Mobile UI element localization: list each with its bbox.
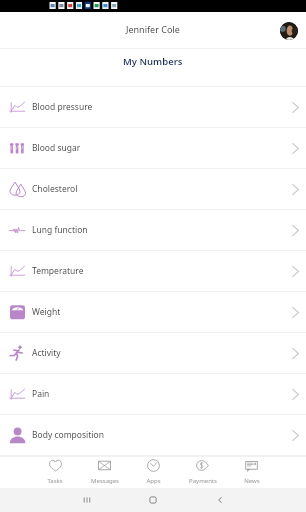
staticText: Activity (32, 347, 61, 359)
staticText: Body composition (32, 429, 104, 441)
button[interactable]: Apps (129, 457, 178, 488)
staticText: Blood sugar (32, 142, 81, 154)
staticText: News (244, 477, 260, 485)
staticText: Cholesterol (32, 183, 78, 195)
staticText: Lung function (32, 224, 88, 236)
button[interactable]: Body composition (0, 415, 306, 455)
staticText: Temperature (32, 265, 84, 277)
button[interactable]: News (227, 457, 276, 488)
staticText: Apps (146, 477, 161, 485)
button[interactable]: Pain (0, 374, 306, 414)
button[interactable]: My Numbers (109, 49, 197, 79)
button[interactable]: Profile (280, 22, 298, 40)
button[interactable]: Cholesterol (0, 169, 306, 209)
staticText: Pain (32, 388, 50, 400)
button[interactable]: Activity (0, 333, 306, 373)
staticText: Jennifer Cole (126, 23, 180, 35)
button[interactable]: Temperature (0, 251, 306, 291)
button[interactable]: Weight (0, 292, 306, 332)
button[interactable]: Lung function (0, 210, 306, 250)
staticText: Tasks (47, 477, 63, 485)
button[interactable]: Blood pressure (0, 87, 306, 127)
staticText: Blood pressure (32, 101, 93, 113)
button[interactable]: Payments (178, 457, 227, 488)
button[interactable]: Recents (80, 493, 94, 507)
button[interactable]: Tasks (30, 457, 80, 488)
button[interactable]: Messages (80, 457, 129, 488)
button[interactable]: Home (146, 493, 160, 507)
staticText: Weight (32, 306, 61, 318)
staticText: Payments (189, 477, 217, 485)
button[interactable]: Blood sugar (0, 128, 306, 168)
button[interactable]: Back (213, 493, 227, 507)
staticText: My Numbers (123, 55, 183, 68)
staticText: Messages (91, 477, 119, 485)
